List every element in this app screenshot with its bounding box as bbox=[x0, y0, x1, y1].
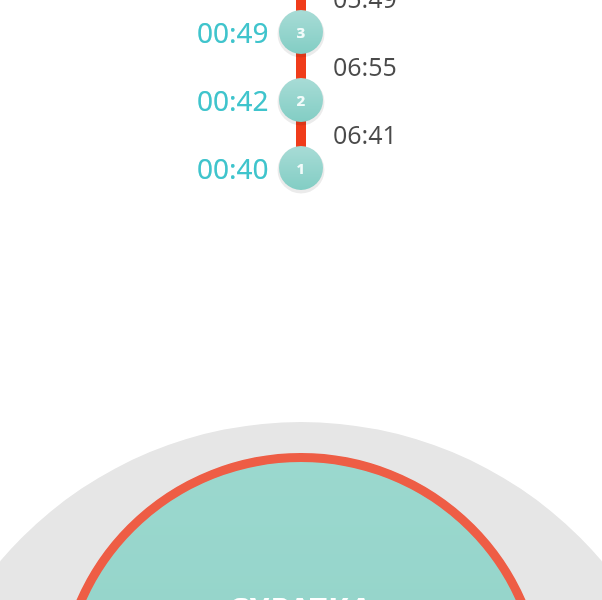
button[interactable]: СУРАТКА badge bbox=[0, 0, 602, 600]
